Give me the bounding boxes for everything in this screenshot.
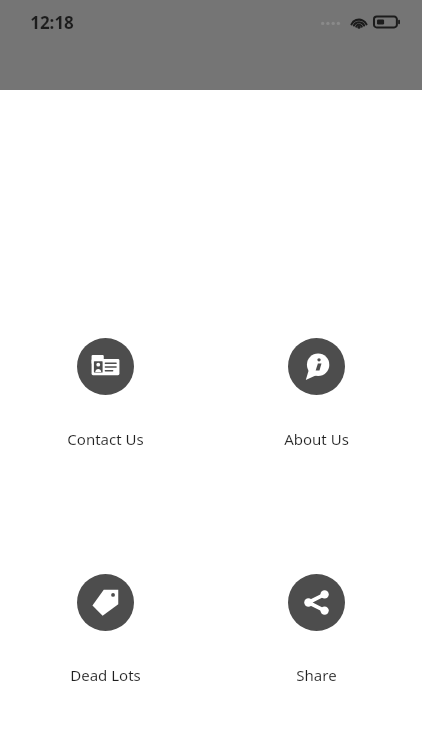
button[interactable]: Contact Us [59, 336, 152, 451]
staticText: Dead Lots [70, 665, 141, 685]
staticText: About Us [284, 429, 349, 449]
button[interactable]: About Us [276, 336, 357, 451]
button[interactable]: Share [280, 572, 353, 687]
staticText: Share [296, 665, 337, 685]
button[interactable]: Dead Lots [62, 572, 149, 687]
staticText: Contact Us [67, 429, 144, 449]
staticText: 12:18 [30, 11, 74, 34]
